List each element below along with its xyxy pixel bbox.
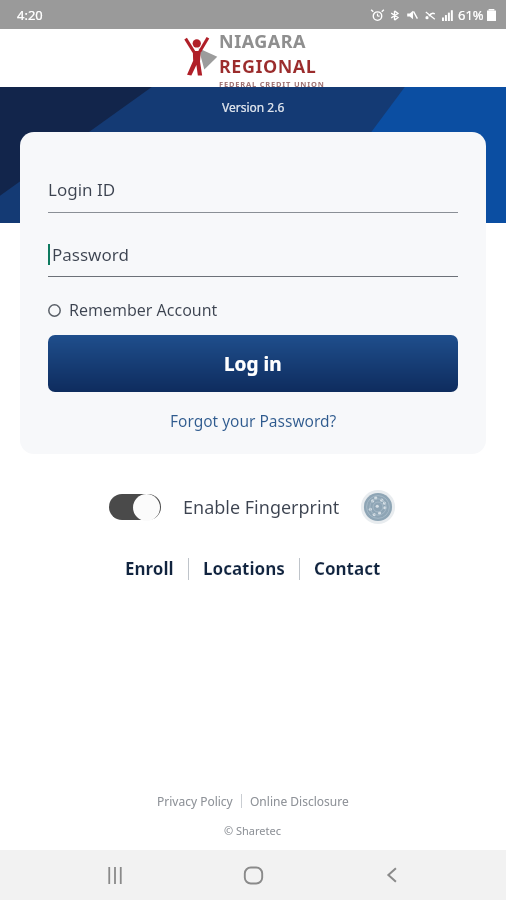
button[interactable]: Enable Fingerprint toggle — [109, 493, 165, 521]
staticText: Remember Account — [69, 299, 218, 321]
button[interactable]: Contact — [300, 552, 395, 585]
button[interactable]: Remember Account — [48, 297, 218, 323]
staticText: Online Disclosure — [250, 793, 349, 809]
staticText: Forgot your Password? — [170, 410, 337, 431]
button[interactable]: Enable Fingerprint — [183, 495, 340, 520]
button[interactable]: Home — [229, 851, 277, 899]
staticText: Login ID — [48, 178, 116, 201]
staticText: NIAGARA — [219, 29, 306, 54]
button[interactable]: Recents — [91, 851, 139, 899]
staticText: 4:20 — [17, 6, 43, 24]
staticText: Contact — [314, 557, 381, 580]
staticText: 61% — [458, 6, 484, 24]
button[interactable]: Log in — [48, 335, 458, 392]
staticText: Enroll — [125, 557, 174, 580]
button[interactable]: Enroll — [111, 552, 188, 585]
button[interactable]: Privacy Policy — [149, 790, 241, 812]
button[interactable]: Forgot your Password? — [48, 407, 458, 434]
staticText: Log in — [224, 351, 282, 377]
button[interactable]: Online Disclosure — [242, 790, 357, 812]
staticText: FEDERAL CREDIT UNION — [219, 79, 325, 87]
staticText: Privacy Policy — [157, 793, 233, 809]
staticText: Version 2.6 — [222, 99, 285, 115]
button[interactable]: Login ID — [48, 178, 458, 213]
staticText: © Sharetec — [224, 823, 282, 838]
button[interactable]: Back — [368, 851, 416, 899]
staticText: REGIONAL — [219, 54, 317, 79]
button[interactable]: Locations — [189, 552, 299, 585]
button[interactable]: Password — [48, 243, 458, 277]
staticText: Password — [52, 243, 129, 266]
button[interactable]: Fingerprint — [358, 487, 398, 527]
staticText: Locations — [203, 557, 285, 580]
